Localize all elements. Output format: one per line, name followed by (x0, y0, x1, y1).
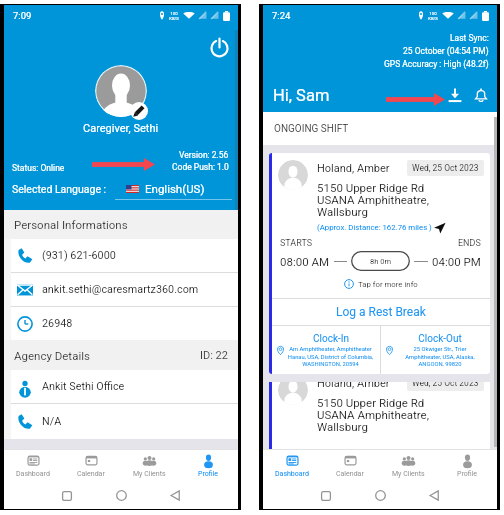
staticText: Holand, Amber (317, 382, 390, 390)
button[interactable]: Edit photo (130, 102, 148, 120)
button[interactable]: Dashboard (4, 450, 62, 482)
staticText: Selected Language : (12, 183, 107, 195)
button[interactable]: Holand, Amber (269, 153, 490, 374)
staticText: My Clients (392, 470, 425, 478)
button[interactable]: Recents (45, 482, 89, 509)
staticText: Tap for more info (358, 280, 418, 289)
staticText: Code Push: 1.0 (172, 162, 229, 172)
staticText: Holand, Amber (317, 162, 390, 175)
staticText: (931) 621-6000 (42, 249, 116, 262)
button[interactable]: (931) 621-6000 (11, 239, 238, 272)
staticText: Ankit Sethi Office (42, 380, 125, 393)
staticText: Calendar (336, 470, 364, 478)
staticText: ENDS (458, 238, 481, 249)
staticText: Version: 2.56 (179, 150, 229, 160)
staticText: 7:24 (272, 10, 291, 21)
button[interactable]: Profile (438, 450, 497, 482)
button[interactable]: Log out (208, 36, 230, 58)
button[interactable]: Ankit Sethi Office (11, 370, 238, 403)
staticText: English(US) (145, 182, 205, 195)
button[interactable]: N/A (11, 404, 238, 439)
staticText: Dashboard (275, 470, 309, 478)
staticText: Caregiver, Sethi (83, 122, 159, 135)
staticText: Status: Online (12, 163, 65, 173)
button[interactable]: Clock-In (272, 326, 380, 374)
staticText: 5150 Upper Ridge Rd USANA Amphitheatre, … (317, 181, 429, 219)
staticText: STARTS (280, 238, 313, 249)
button[interactable]: Recents (304, 482, 348, 509)
staticText: Log a Rest Break (336, 305, 426, 319)
staticText: Last Sync: (450, 33, 489, 43)
button[interactable]: Log a Rest Break (272, 299, 490, 325)
button[interactable]: Dashboard (263, 450, 321, 482)
button[interactable]: Home (99, 482, 143, 509)
staticText: Wed, 25 Oct 2023 (412, 163, 479, 173)
staticText: Agency Details (14, 349, 90, 362)
staticText: Clock-Out (418, 333, 462, 345)
button[interactable]: My Clients (379, 450, 438, 482)
staticText: (Approx. Distance: 162.76 miles ) (317, 223, 432, 232)
button[interactable]: Notifications (471, 85, 491, 105)
button[interactable]: English(US) (120, 182, 230, 195)
button[interactable]: Home (358, 482, 402, 509)
staticText: 08:00 AM (280, 255, 330, 268)
staticText: 8h 0m (370, 257, 391, 266)
staticText: GPS Accuracy : High (48.2f) (384, 59, 489, 69)
staticText: Clock-In (313, 333, 349, 345)
staticText: 26948 (42, 317, 73, 330)
button[interactable]: Calendar (321, 450, 379, 482)
button[interactable]: 26948 (11, 307, 238, 340)
staticText: ONGOING SHIFT (274, 123, 349, 135)
button[interactable]: Back (412, 482, 456, 509)
staticText: Personal Informations (14, 218, 128, 231)
button[interactable]: Holand, Amber (269, 382, 490, 449)
staticText: Profile (198, 470, 219, 478)
staticText: 100 KB/S (169, 11, 179, 21)
button[interactable]: Download (445, 85, 465, 105)
staticText: Hi, Sam (273, 86, 330, 105)
button[interactable]: Clock-Out (381, 326, 490, 374)
staticText: 5150 Upper Ridge Rd USANA Amphitheatre, … (317, 396, 429, 434)
staticText: ankit.sethi@caresmartz360.com (42, 283, 199, 296)
button[interactable]: ankit.sethi@caresmartz360.com (11, 273, 238, 306)
staticText: 25 Okwiger Str., Trier Amphitheater, USA… (394, 346, 486, 367)
button[interactable]: Back (153, 482, 197, 509)
staticText: Calendar (77, 470, 105, 478)
staticText: Wed, 25 Oct 2023 (412, 382, 479, 388)
button[interactable]: Calendar (62, 450, 120, 482)
staticText: ID: 22 (200, 349, 228, 362)
button[interactable]: My Clients (120, 450, 179, 482)
staticText: My Clients (133, 470, 166, 478)
staticText: Profile (457, 470, 478, 478)
staticText: 04:00 PM (432, 255, 481, 268)
staticText: Am Amphitheater, Amphitheater Hanau, USA… (285, 346, 376, 367)
staticText: N/A (42, 415, 62, 428)
staticText: 100 KB/S (428, 11, 438, 21)
staticText: 7:09 (13, 10, 32, 21)
staticText: 25 October (04:54 PM) (403, 46, 489, 56)
button[interactable]: Profile (179, 450, 238, 482)
staticText: Dashboard (16, 470, 50, 478)
